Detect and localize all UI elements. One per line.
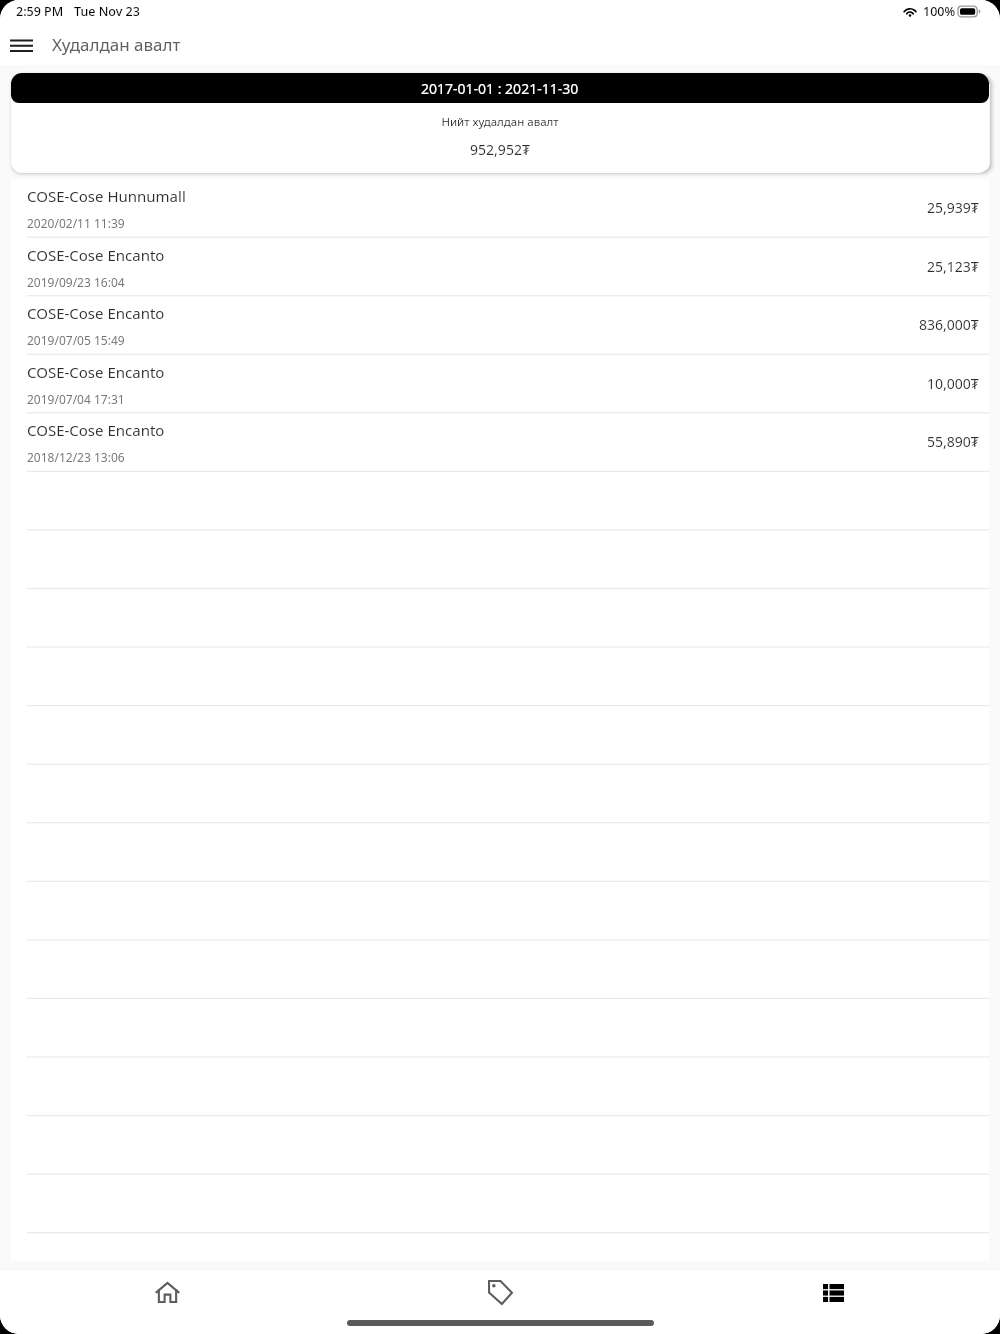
staticText: Tue Nov 23 xyxy=(74,3,140,20)
staticText: COSE-Cose Encanto xyxy=(27,362,165,382)
staticText: COSE-Cose Encanto xyxy=(27,303,165,323)
staticText: 10,000₮ xyxy=(927,374,979,393)
button[interactable]: COSE-Cose Encanto xyxy=(11,238,989,297)
button[interactable]: COSE-Cose Encanto xyxy=(11,355,989,414)
staticText: 952,952₮ xyxy=(11,140,989,159)
staticText: 55,890₮ xyxy=(927,432,979,451)
staticText: Нийт худалдан авалт xyxy=(11,114,989,130)
staticText: 2019/09/23 16:04 xyxy=(27,274,125,290)
staticText: 836,000₮ xyxy=(919,315,979,334)
staticText: 2019/07/04 17:31 xyxy=(27,391,125,407)
staticText: Худалдан авалт xyxy=(52,33,181,56)
staticText: 25,123₮ xyxy=(927,257,979,276)
staticText: 2019/07/05 15:49 xyxy=(27,332,125,348)
staticText: COSE-Cose Encanto xyxy=(27,245,165,265)
staticText: 100% xyxy=(923,3,956,20)
staticText: 2018/12/23 13:06 xyxy=(27,449,125,465)
button[interactable]: COSE-Cose Encanto xyxy=(11,296,989,355)
staticText: 25,939₮ xyxy=(927,198,979,217)
staticText: 2:59 PM xyxy=(16,3,64,20)
staticText: 2020/02/11 11:39 xyxy=(27,215,125,231)
staticText: COSE-Cose Hunnumall xyxy=(27,186,186,206)
button[interactable]: List xyxy=(667,1271,1000,1314)
button[interactable]: Menu xyxy=(0,24,42,65)
staticText: COSE-Cose Encanto xyxy=(27,420,165,440)
staticText: 2017-01-01 : 2021-11-30 xyxy=(421,79,579,98)
button[interactable]: Tags xyxy=(334,1271,667,1314)
button[interactable]: COSE-Cose Hunnumall xyxy=(11,179,989,238)
button[interactable]: COSE-Cose Encanto xyxy=(11,413,989,472)
button[interactable]: Home xyxy=(0,1271,334,1314)
